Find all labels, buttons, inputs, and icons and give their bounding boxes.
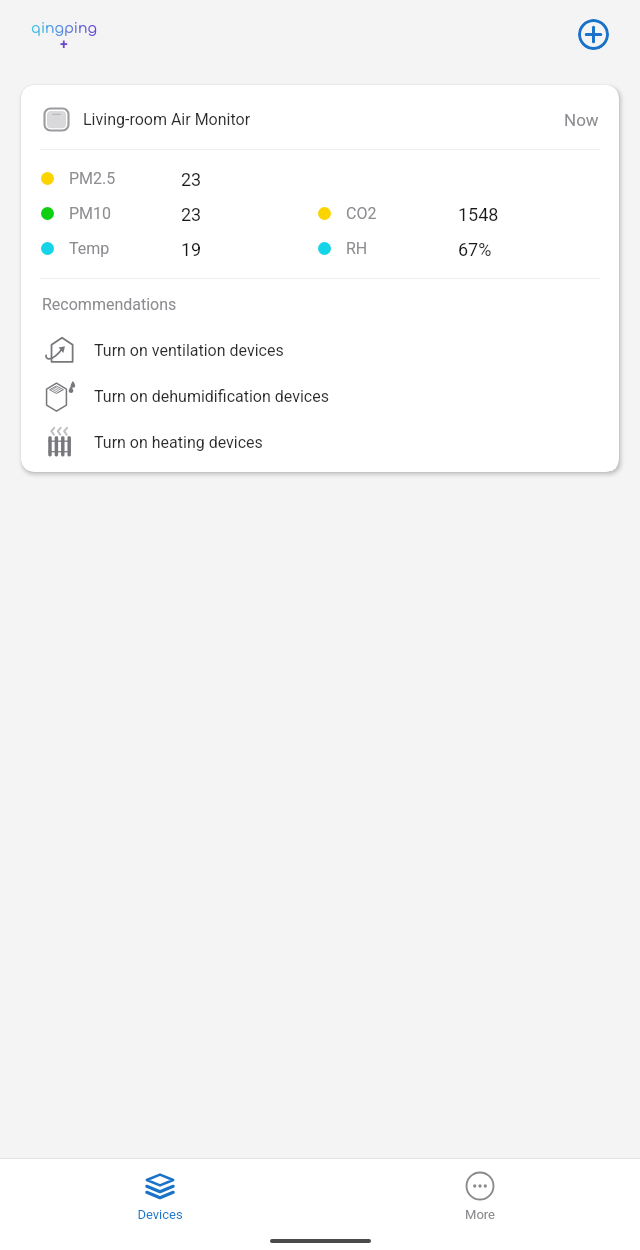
staticText: More [465,1207,495,1222]
staticText: CO2 [346,204,377,223]
button[interactable]: Devices [0,1159,320,1239]
staticText: PM2.5 [69,169,116,188]
staticText: Recommendations [42,295,177,314]
button[interactable]: Living-room Air Monitor [21,85,619,472]
staticText: PM10 [69,204,112,223]
staticText: Turn on dehumidification devices [94,387,329,406]
staticText: Living-room Air Monitor [83,110,251,129]
staticText: Devices [137,1207,183,1222]
staticText: 67% [458,239,492,260]
button[interactable]: Turn on heating devices [21,419,619,465]
staticText: 19 [181,239,202,260]
staticText: 23 [181,169,202,190]
staticText: 23 [181,204,202,225]
staticText: Temp [69,239,110,258]
staticText: 1548 [458,204,499,225]
staticText: Turn on ventilation devices [94,341,284,360]
button[interactable]: Turn on dehumidification devices [21,373,619,419]
staticText: qingping [31,21,97,37]
staticText: Now [564,110,599,130]
staticText: + [60,36,68,52]
staticText: Turn on heating devices [94,433,263,452]
button[interactable]: More [320,1159,640,1239]
button[interactable]: Turn on ventilation devices [21,327,619,373]
staticText: RH [346,239,368,258]
button[interactable]: Add device [578,19,609,50]
